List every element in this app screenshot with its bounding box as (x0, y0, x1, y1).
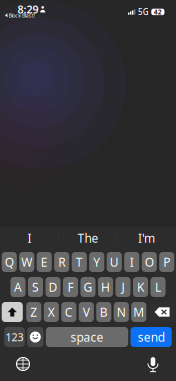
button[interactable]: Z (26, 302, 41, 322)
button[interactable]: Delete (150, 302, 174, 322)
staticText: C (65, 304, 73, 320)
staticText: Block Blast! (8, 12, 35, 19)
staticText: N (117, 304, 126, 320)
button[interactable]: A (10, 277, 26, 297)
button[interactable]: Block Blast! (5, 12, 35, 19)
staticText: S (32, 279, 39, 295)
staticText: I'm (138, 230, 155, 246)
staticText: B (100, 304, 108, 320)
button[interactable]: R (54, 252, 69, 272)
button[interactable]: M (131, 302, 146, 322)
staticText: D (48, 279, 57, 295)
button[interactable]: S (28, 277, 43, 297)
staticText: 5G (138, 7, 149, 17)
button[interactable]: J (115, 277, 131, 297)
staticText: M (133, 304, 144, 320)
button[interactable]: U (107, 252, 122, 272)
staticText: A (14, 279, 22, 295)
button[interactable]: N (114, 302, 129, 322)
button[interactable]: L (150, 277, 166, 297)
button[interactable]: Dictation (136, 352, 170, 376)
staticText: H (101, 279, 110, 295)
staticText: space (70, 329, 103, 345)
button[interactable]: D (45, 277, 61, 297)
button[interactable]: Q (2, 252, 17, 272)
staticText: G (83, 279, 92, 295)
button[interactable]: T (72, 252, 87, 272)
button[interactable]: B (96, 302, 111, 322)
button[interactable]: I (0, 227, 59, 249)
staticText: 8:29 (17, 2, 38, 16)
staticText: P (163, 254, 170, 270)
button[interactable]: V (79, 302, 94, 322)
button[interactable]: X (44, 302, 59, 322)
staticText: Y (93, 254, 100, 270)
staticText: E (41, 254, 48, 270)
button[interactable]: Shift (2, 302, 23, 322)
staticText: U (110, 254, 119, 270)
staticText: O (145, 254, 154, 270)
button[interactable]: The (59, 227, 117, 249)
staticText: I (27, 230, 31, 246)
staticText: send (138, 329, 165, 345)
button[interactable]: I (124, 252, 139, 272)
staticText: I (130, 254, 134, 270)
button[interactable]: send (131, 327, 172, 347)
staticText: V (83, 304, 90, 320)
staticText: The (77, 230, 98, 246)
staticText: J (121, 279, 124, 295)
staticText: T (76, 254, 83, 270)
staticText: Z (30, 304, 37, 320)
button[interactable]: Emoji (27, 327, 43, 347)
button[interactable]: C (61, 302, 76, 322)
button[interactable]: P (159, 252, 174, 272)
button[interactable]: W (19, 252, 34, 272)
button[interactable]: Y (89, 252, 104, 272)
staticText: X (48, 304, 55, 320)
button[interactable]: space (46, 327, 128, 347)
staticText: Q (5, 254, 14, 270)
button[interactable]: O (142, 252, 157, 272)
button[interactable]: Next keyboard (6, 352, 40, 376)
staticText: K (137, 279, 144, 295)
button[interactable]: F (63, 277, 78, 297)
staticText: L (155, 279, 161, 295)
button[interactable]: 123 (4, 327, 25, 347)
button[interactable]: H (98, 277, 113, 297)
button[interactable]: G (80, 277, 96, 297)
staticText: F (67, 279, 73, 295)
button[interactable]: I'm (117, 227, 176, 249)
button[interactable]: E (37, 252, 52, 272)
button[interactable]: K (133, 277, 148, 297)
staticText: 123 (5, 330, 23, 344)
staticText: 42 (154, 7, 162, 16)
staticText: W (21, 254, 32, 270)
staticText: R (58, 254, 65, 270)
